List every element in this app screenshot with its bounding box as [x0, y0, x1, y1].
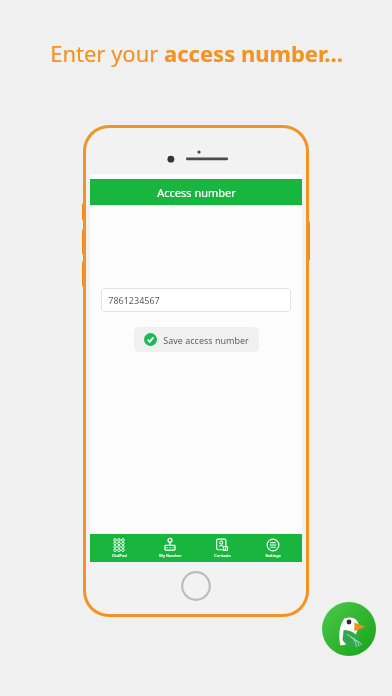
other: App logo [322, 602, 376, 656]
staticText: Enter your access number... [50, 38, 343, 68]
staticText: Access number [157, 185, 236, 200]
staticText: My Number [159, 553, 182, 558]
button[interactable]: Settings [250, 534, 296, 562]
staticText: Settings [265, 553, 281, 558]
button[interactable]: 7861234567 [101, 288, 291, 312]
staticText: Save access number [163, 334, 249, 346]
staticText: 7861234567 [108, 294, 160, 306]
staticText: DialPad [112, 553, 127, 558]
button[interactable]: Contacts [199, 534, 245, 562]
other: Home [181, 571, 211, 601]
button[interactable]: DialPad [96, 534, 142, 562]
button[interactable]: Save access number [134, 327, 259, 352]
button[interactable]: My Number [147, 534, 193, 562]
staticText: Contacts [214, 553, 231, 558]
